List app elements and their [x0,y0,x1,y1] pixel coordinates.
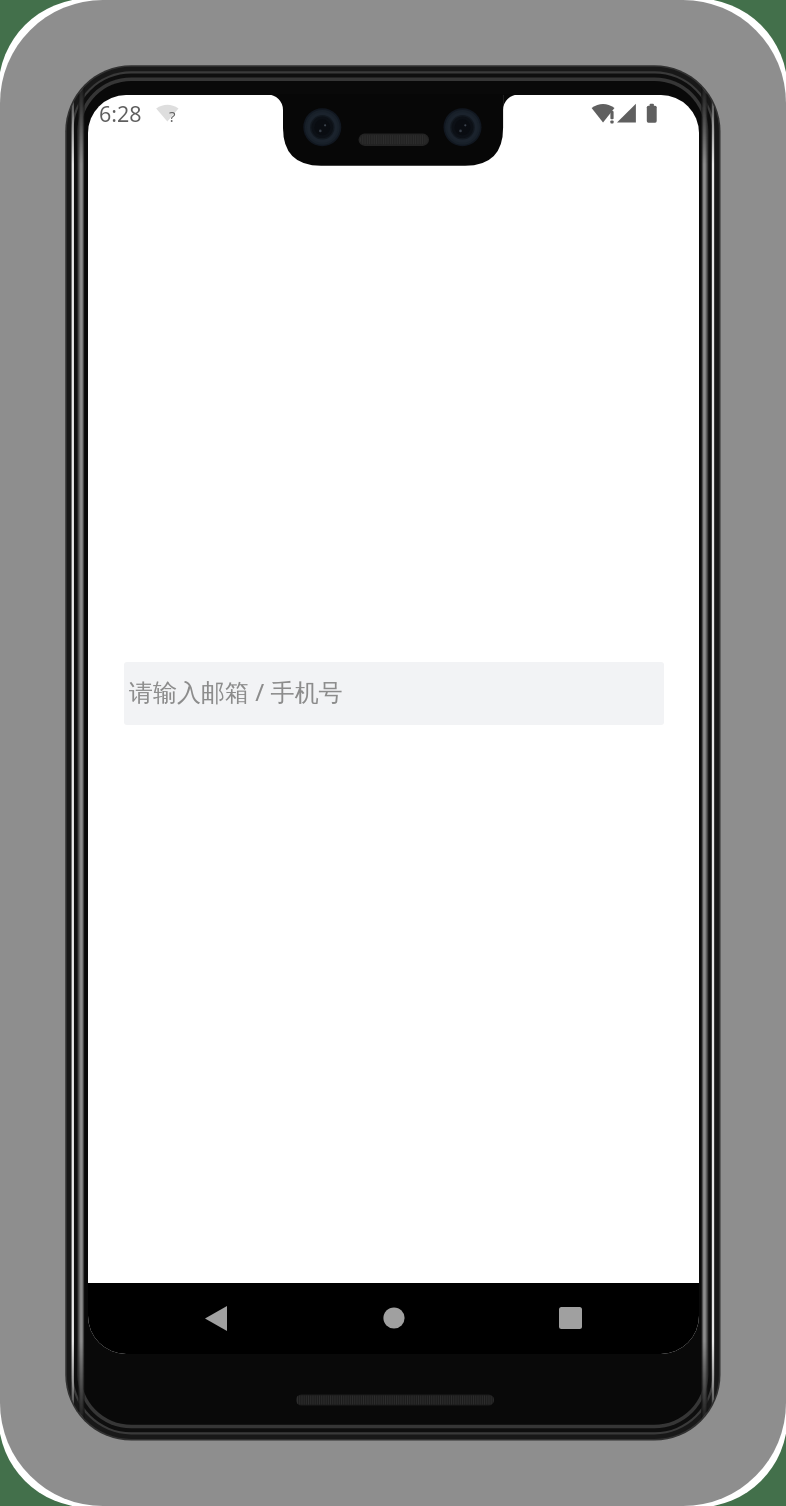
button[interactable]: Back [205,1306,227,1331]
button[interactable]: 请输入邮箱 / 手机号 [124,662,664,725]
button[interactable]: Home [383,1307,405,1329]
button[interactable]: Recent apps [559,1307,582,1329]
staticText: 请输入邮箱 / 手机号 [129,675,343,708]
staticText: ? [169,106,176,126]
staticText: 6:28 [99,99,142,128]
